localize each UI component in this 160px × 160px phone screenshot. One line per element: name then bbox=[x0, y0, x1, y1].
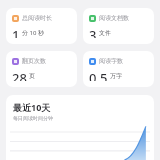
other: 阅读文档数 bbox=[89, 15, 96, 22]
staticText: 最近10天 bbox=[13, 101, 51, 113]
other: 阅读字数 bbox=[89, 58, 96, 65]
staticText: 0.5 bbox=[89, 69, 108, 81]
staticText: 总阅读时长 bbox=[22, 14, 52, 22]
staticText: 文件 bbox=[99, 29, 111, 37]
staticText: 页 bbox=[29, 72, 35, 80]
staticText: 28 bbox=[12, 69, 27, 81]
staticText: 阅读字数 bbox=[99, 57, 123, 65]
staticText: 3 bbox=[89, 26, 97, 38]
staticText: 万字 bbox=[110, 72, 122, 80]
button[interactable]: 翻页次数 bbox=[6, 51, 77, 87]
button[interactable]: 总阅读时长 bbox=[6, 8, 77, 44]
other: 总阅读时长 bbox=[12, 15, 19, 22]
button[interactable]: 阅读字数 bbox=[83, 51, 154, 87]
button[interactable]: 阅读文档数 bbox=[83, 8, 154, 44]
staticText: 每日阅读时间分钟 bbox=[13, 115, 53, 121]
button[interactable]: 最近10天 bbox=[6, 95, 154, 160]
other: 翻页次数 bbox=[12, 58, 19, 65]
staticText: 1 bbox=[12, 26, 20, 38]
staticText: 阅读文档数 bbox=[99, 14, 129, 22]
staticText: 翻页次数 bbox=[22, 57, 46, 65]
staticText: 分 10 秒 bbox=[22, 29, 44, 37]
